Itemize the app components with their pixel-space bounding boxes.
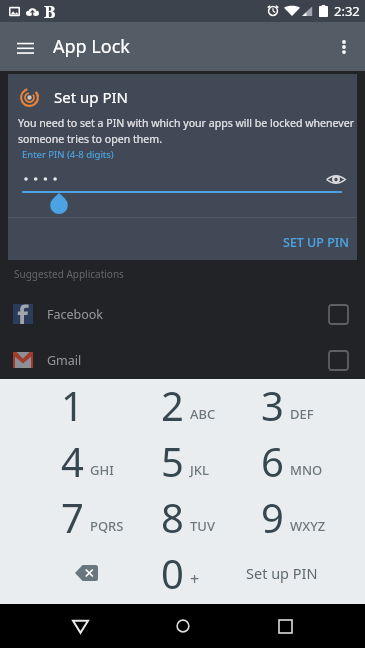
staticText: MNO <box>290 461 323 479</box>
button[interactable]: 8 <box>122 492 222 548</box>
staticText: Set up PIN <box>246 563 318 583</box>
staticText: + <box>190 568 200 590</box>
staticText: B <box>44 0 56 22</box>
staticText: ABC <box>190 405 216 423</box>
staticText: 4 <box>61 434 84 488</box>
button[interactable]: Gmail <box>0 337 365 383</box>
button[interactable]: 5 <box>122 436 222 492</box>
button[interactable]: Back <box>58 604 102 648</box>
staticText: PQRS <box>90 517 124 535</box>
button[interactable]: 0 <box>122 548 222 604</box>
button[interactable]: Facebook <box>0 291 365 337</box>
staticText: GHI <box>90 461 114 479</box>
staticText: JKL <box>190 461 209 479</box>
staticText: You need to set a PIN with which your ap… <box>18 116 356 146</box>
staticText: Facebook <box>47 306 104 323</box>
button[interactable]: Menu <box>8 30 42 64</box>
button[interactable]: 6 <box>222 436 322 492</box>
staticText: 7 <box>61 490 84 544</box>
button[interactable]: 3 <box>222 379 322 436</box>
button[interactable]: Backspace <box>22 548 122 604</box>
button[interactable]: Set up PIN <box>222 548 322 604</box>
staticText: 0 <box>161 546 184 600</box>
button[interactable]: More options <box>327 30 361 64</box>
staticText: 2:32 <box>334 2 360 20</box>
button[interactable]: 9 <box>222 492 322 548</box>
staticText: DEF <box>290 405 314 423</box>
staticText: TUV <box>190 517 215 535</box>
button[interactable]: 1 <box>22 379 122 436</box>
button[interactable]: 2 <box>122 379 222 436</box>
staticText: 8 <box>161 490 184 544</box>
staticText: Enter PIN (4-8 digits) <box>22 148 114 161</box>
staticText: 3 <box>261 378 284 432</box>
button[interactable]: Recents <box>263 604 307 648</box>
staticText: 1 <box>61 378 84 432</box>
button[interactable]: SET UP PIN <box>275 228 357 257</box>
staticText: 9 <box>261 490 284 544</box>
button[interactable]: 4 <box>22 436 122 492</box>
staticText: Set up PIN <box>54 87 128 107</box>
staticText: 2 <box>161 378 184 432</box>
staticText: WXYZ <box>290 517 326 535</box>
staticText: Gmail <box>47 352 82 369</box>
staticText: 5 <box>161 434 184 488</box>
staticText: Suggested Applications <box>14 267 124 281</box>
button[interactable]: Show PIN <box>325 169 347 189</box>
button[interactable]: Home <box>161 604 205 648</box>
button[interactable]: 7 <box>22 492 122 548</box>
staticText: SET UP PIN <box>283 234 349 251</box>
staticText: 6 <box>261 434 284 488</box>
staticText: App Lock <box>53 34 130 59</box>
